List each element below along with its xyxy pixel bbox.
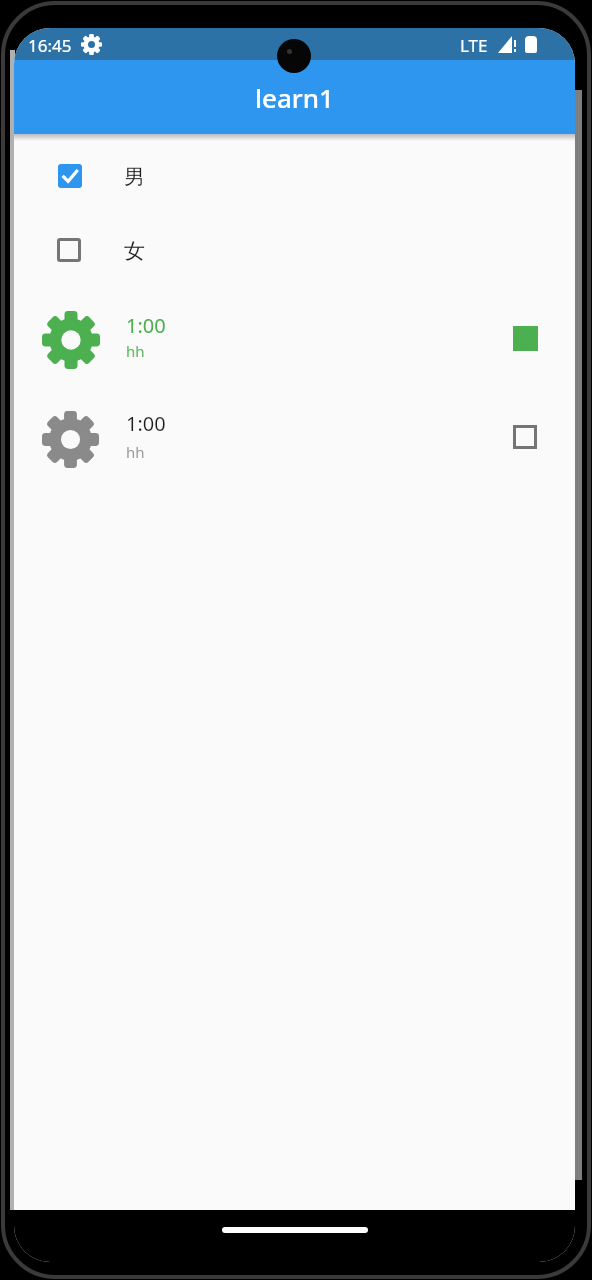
button[interactable] bbox=[513, 425, 537, 449]
staticText: 1:00 bbox=[126, 312, 166, 338]
staticText: 16:45 bbox=[28, 34, 72, 56]
staticText: 男 bbox=[124, 164, 145, 190]
button[interactable]: 男 bbox=[14, 134, 575, 213]
staticText: 1:00 bbox=[126, 410, 166, 436]
staticText: LTE bbox=[460, 34, 488, 56]
staticText: learn1 bbox=[255, 80, 334, 115]
staticText: hh bbox=[126, 442, 145, 462]
staticText: 女 bbox=[124, 238, 145, 264]
button[interactable]: 1:00 bbox=[14, 389, 575, 487]
button[interactable]: 1:00 bbox=[14, 289, 575, 389]
button[interactable]: 女 bbox=[14, 213, 575, 289]
staticText: hh bbox=[126, 341, 145, 361]
